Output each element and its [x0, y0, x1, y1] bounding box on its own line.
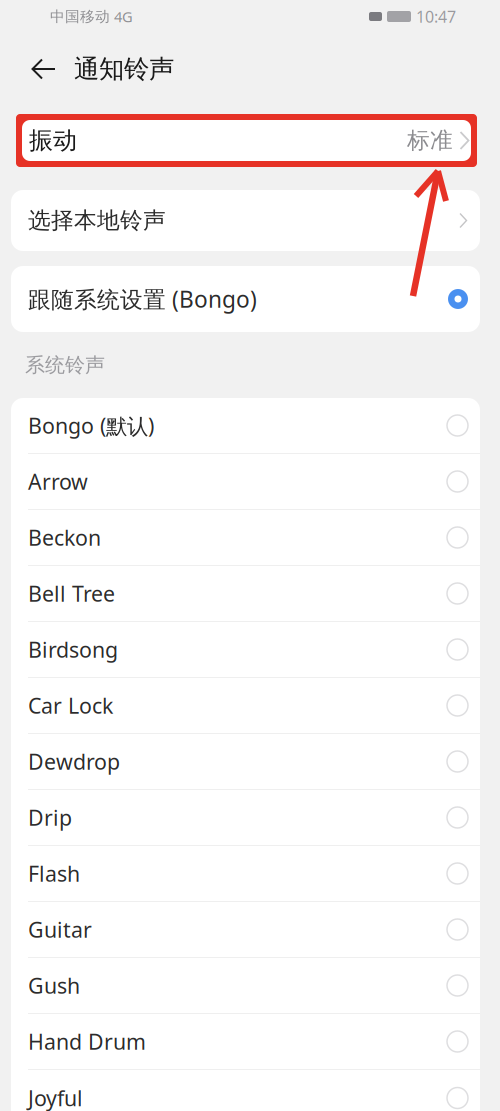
- button[interactable]: Hand Drum: [11, 1014, 480, 1070]
- button[interactable]: Birdsong: [11, 622, 480, 678]
- staticText: Drip: [28, 803, 72, 832]
- button[interactable]: Guitar: [11, 902, 480, 958]
- button[interactable]: Bell Tree: [11, 566, 480, 622]
- button[interactable]: Beckon: [11, 510, 480, 566]
- staticText: Bongo (默认): [28, 411, 154, 440]
- staticText: 系统铃声: [25, 353, 105, 377]
- staticText: Beckon: [28, 523, 101, 552]
- staticText: Dewdrop: [28, 747, 120, 776]
- staticText: Gush: [28, 971, 80, 1000]
- button[interactable]: Joyful: [11, 1070, 480, 1111]
- staticText: 选择本地铃声: [28, 207, 166, 234]
- staticText: Guitar: [28, 915, 92, 944]
- staticText: 标准: [407, 127, 453, 154]
- staticText: Hand Drum: [28, 1027, 146, 1056]
- staticText: Flash: [28, 859, 80, 888]
- button[interactable]: Dewdrop: [11, 734, 480, 790]
- button[interactable]: 跟随系统设置 (Bongo): [11, 266, 480, 332]
- staticText: Joyful: [28, 1084, 83, 1111]
- button[interactable]: Back: [25, 48, 62, 90]
- staticText: Bell Tree: [28, 579, 115, 608]
- button[interactable]: Flash: [11, 846, 480, 902]
- staticText: 通知铃声: [74, 53, 174, 84]
- staticText: 跟随系统设置 (Bongo): [28, 284, 257, 314]
- staticText: Car Lock: [28, 691, 113, 720]
- staticText: 4G: [114, 7, 133, 26]
- staticText: 10:47: [416, 6, 456, 27]
- button[interactable]: Arrow: [11, 454, 480, 510]
- staticText: 振动: [29, 126, 77, 155]
- staticText: 中国移动: [50, 7, 110, 25]
- button[interactable]: Gush: [11, 958, 480, 1014]
- button[interactable]: Drip: [11, 790, 480, 846]
- button[interactable]: Bongo (默认): [11, 398, 480, 454]
- button[interactable]: 振动: [16, 114, 477, 167]
- button[interactable]: 选择本地铃声: [11, 190, 480, 251]
- staticText: Birdsong: [28, 635, 118, 664]
- staticText: Arrow: [28, 467, 88, 496]
- button[interactable]: Car Lock: [11, 678, 480, 734]
